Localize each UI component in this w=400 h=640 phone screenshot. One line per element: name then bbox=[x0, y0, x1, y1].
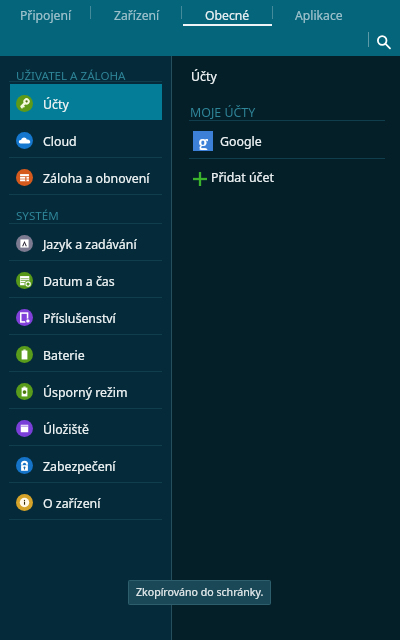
button[interactable]: Aplikace bbox=[273, 0, 364, 26]
staticText: Cloud bbox=[43, 133, 77, 150]
button[interactable]: Záloha a obnovení bbox=[0, 158, 172, 195]
staticText: Zařízení bbox=[114, 7, 160, 24]
button[interactable]: Baterie bbox=[0, 335, 172, 372]
staticText: Google bbox=[220, 133, 262, 150]
button[interactable]: Úložiště bbox=[0, 409, 172, 446]
staticText: Baterie bbox=[43, 347, 85, 364]
button[interactable]: Hledat bbox=[370, 28, 396, 54]
staticText: Účty bbox=[43, 96, 69, 113]
button[interactable]: Zařízení bbox=[91, 0, 182, 26]
staticText: UŽIVATEL A ZÁLOHA bbox=[16, 68, 126, 84]
staticText: Datum a čas bbox=[43, 273, 115, 290]
staticText: Připojení bbox=[20, 7, 72, 24]
staticText: Aplikace bbox=[295, 7, 343, 24]
staticText: Úsporný režim bbox=[43, 384, 128, 401]
button[interactable]: O zařízení bbox=[0, 483, 172, 520]
button[interactable]: Účty bbox=[0, 84, 172, 121]
button[interactable]: Úsporný režim bbox=[0, 372, 172, 409]
staticText: O zařízení bbox=[43, 495, 101, 512]
staticText: Zkopírováno do schránky. bbox=[136, 585, 264, 599]
staticText: Úložiště bbox=[43, 421, 89, 438]
button[interactable]: Připojení bbox=[0, 0, 91, 26]
button[interactable]: Cloud bbox=[0, 121, 172, 158]
staticText: SYSTÉM bbox=[16, 208, 59, 224]
button[interactable]: Zabezpečení bbox=[0, 446, 172, 483]
staticText: Obecné bbox=[205, 7, 250, 24]
staticText: Záloha a obnovení bbox=[43, 170, 150, 187]
button[interactable]: Datum a čas bbox=[0, 261, 172, 298]
staticText: MOJE ÚČTY bbox=[190, 104, 256, 121]
button[interactable]: g bbox=[175, 121, 400, 158]
button[interactable]: Obecné bbox=[182, 0, 273, 26]
staticText: Účty bbox=[191, 68, 217, 85]
button[interactable]: Příslušenství bbox=[0, 298, 172, 335]
staticText: Přidat účet bbox=[211, 169, 274, 186]
button[interactable]: Jazyk a zadávání bbox=[0, 224, 172, 261]
staticText: Jazyk a zadávání bbox=[43, 236, 137, 253]
staticText: Zabezpečení bbox=[43, 458, 116, 475]
staticText: g bbox=[198, 130, 209, 150]
button[interactable]: Přidat účet bbox=[175, 159, 400, 196]
staticText: Příslušenství bbox=[43, 310, 116, 327]
